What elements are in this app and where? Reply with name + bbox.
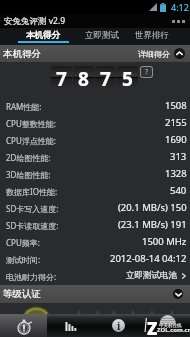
button[interactable]: RAM性能: [0,97,190,114]
staticText: 313 [170,150,187,163]
button[interactable]: 2D绘图性能: [0,148,190,165]
staticText: 电池耐力得分: [6,271,57,282]
staticText: CPU浮点性能: [6,135,56,146]
staticText: SD卡读取速度: [6,220,59,231]
staticText: CPU频率: [6,237,40,248]
staticText: Z [147,317,158,337]
staticText: i [117,319,121,332]
staticText: 立即测试电池 [126,270,177,281]
staticText: (23.1 MB/s) 191 [118,218,187,231]
staticText: (20.1 MB/s) 150 [118,201,187,214]
button[interactable]: 数据库IO性能: [0,182,190,199]
button[interactable]: Device info [94,314,142,337]
button[interactable]: 测试时间: [0,250,190,267]
staticText: 7 [56,66,67,89]
button[interactable]: 世界排行 [126,28,178,45]
staticText: 数据库IO性能: [6,186,58,197]
button[interactable]: Score chart [47,314,94,337]
button[interactable]: 电池耐力得分: [0,267,190,284]
staticText: 2D绘图性能: [6,152,51,163]
button[interactable]: Benchmark test [0,314,47,337]
staticText: 4:12 [171,1,189,13]
staticText: 1328 [165,167,187,180]
button[interactable]: About [142,314,190,337]
staticText: 世界排行 [135,30,169,41]
staticText: 详细得分 [138,49,170,59]
button[interactable]: CPU整数性能: [0,114,190,131]
staticText: 2155 [165,116,187,129]
staticText: 8 [78,66,89,89]
staticText: 7 [100,66,111,89]
staticText: 安兔兔评测 v2.9 [4,15,66,27]
staticText: ZOL.com.cn [157,326,190,334]
button[interactable]: 本机得分 [8,28,78,45]
staticText: CPU整数性能: [6,118,56,129]
staticText: 1508 [165,99,187,112]
staticText: RAM性能: [6,101,42,112]
staticText: 本机得分 [26,30,60,41]
staticText: 5 [122,66,133,89]
staticText: 1500 MHz [142,235,187,248]
button[interactable]: More options [167,16,190,27]
button[interactable]: Collapse [173,289,183,299]
button[interactable]: 3D绘图性能: [0,165,190,182]
button[interactable]: CPU浮点性能: [0,131,190,148]
staticText: 本机得分 [3,48,41,60]
staticText: SD卡写入速度: [6,203,59,214]
button[interactable]: 立即测试 [78,28,126,45]
staticText: 等级认证 [3,288,41,300]
button[interactable]: Help [141,67,152,77]
button[interactable]: 等级认证 [0,285,190,303]
button[interactable]: SD卡写入速度: [0,199,190,216]
button[interactable]: CPU频率: [0,233,190,250]
staticText: 3D绘图性能: [6,169,51,180]
button[interactable]: 详细得分 [138,48,190,59]
staticText: 测试时间: [6,254,41,265]
staticText: 2012-08-14 04:12 [110,252,187,265]
button[interactable]: SD卡读取速度: [0,216,190,233]
staticText: 540 [170,184,187,197]
staticText: ? [145,67,149,77]
staticText: 立即测试 [85,30,119,41]
staticText: 中关村在线 [159,323,182,329]
staticText: 1690 [165,133,187,146]
